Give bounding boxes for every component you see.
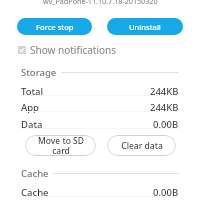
button[interactable]: Uninstall (107, 18, 183, 35)
button[interactable]: Cache (0, 184, 200, 200)
button[interactable]: App (0, 99, 200, 115)
staticText: Cache (21, 167, 49, 180)
staticText: Total (21, 85, 44, 98)
staticText: 0.00B (153, 118, 179, 131)
button[interactable]: Data (0, 116, 200, 132)
staticText: Uninstall (129, 22, 161, 32)
button[interactable]: Move to SD card (25, 135, 96, 156)
staticText: Storage (21, 66, 57, 79)
button[interactable]: Show notifications (18, 43, 117, 57)
staticText: Force stop (36, 22, 74, 32)
staticText: wv_PadPone-11.10.7.18-20150320 (43, 0, 158, 6)
staticText: 0.00B (153, 186, 179, 199)
staticText: Data (21, 118, 43, 131)
button[interactable]: Clear data (107, 135, 176, 156)
staticText: 244KB (150, 101, 179, 114)
staticText: Move to SD card (38, 135, 84, 156)
button[interactable]: Force stop (17, 18, 92, 35)
staticText: Clear data (121, 140, 163, 152)
staticText: 244KB (150, 85, 179, 98)
staticText: App (21, 101, 40, 114)
staticText: Show notifications (30, 43, 117, 57)
staticText: Cache (21, 186, 49, 199)
button[interactable]: Total (0, 83, 200, 99)
